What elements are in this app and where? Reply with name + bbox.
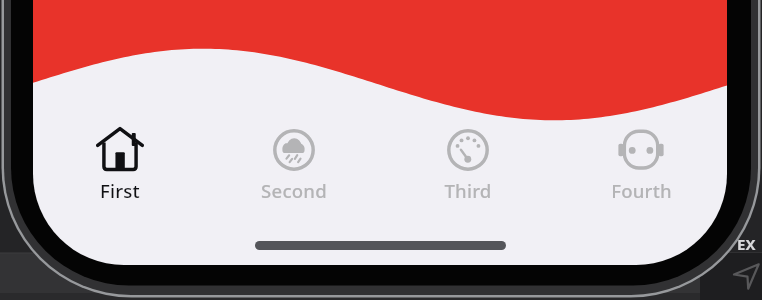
button[interactable]: Third	[381, 124, 555, 205]
button[interactable]: Fourth	[555, 124, 727, 205]
staticText: Third	[444, 178, 492, 203]
other: First	[96, 126, 144, 174]
other: Fourth	[617, 126, 665, 174]
staticText: EX	[737, 234, 756, 254]
other: Second	[270, 126, 318, 174]
staticText: Fourth	[611, 178, 672, 203]
other: Third	[444, 126, 492, 174]
staticText: First	[100, 178, 140, 203]
button[interactable]: Second	[207, 124, 381, 205]
staticText: Second	[261, 178, 327, 203]
button[interactable]: First	[33, 124, 207, 205]
